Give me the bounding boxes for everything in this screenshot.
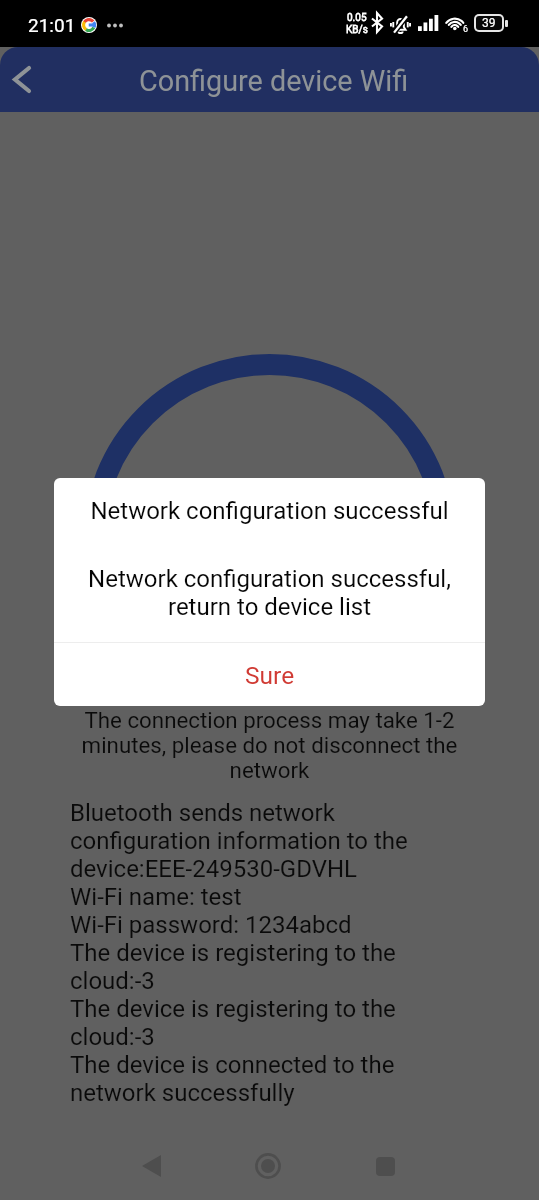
button[interactable]: Back [121,1136,181,1196]
staticText: 39 [482,16,496,30]
staticText: 6 [463,24,469,35]
staticText: Sure [245,661,295,690]
staticText: Network configuration successful [66,497,473,525]
button[interactable]: Sure [54,644,485,706]
button[interactable]: Home [238,1136,298,1196]
staticText: The connection process may take 1-2 minu… [42,707,497,783]
button[interactable]: Back [0,47,44,112]
staticText: 21:01 [28,14,76,36]
staticText: Network configuration successful, return… [68,565,471,621]
staticText: Configure device Wifi [139,64,409,98]
staticText: Bluetooth sends network configuration in… [70,799,479,1107]
staticText: KB/s [346,24,368,36]
button[interactable]: Recent apps [355,1136,415,1196]
staticText: 0.05 [347,12,367,24]
